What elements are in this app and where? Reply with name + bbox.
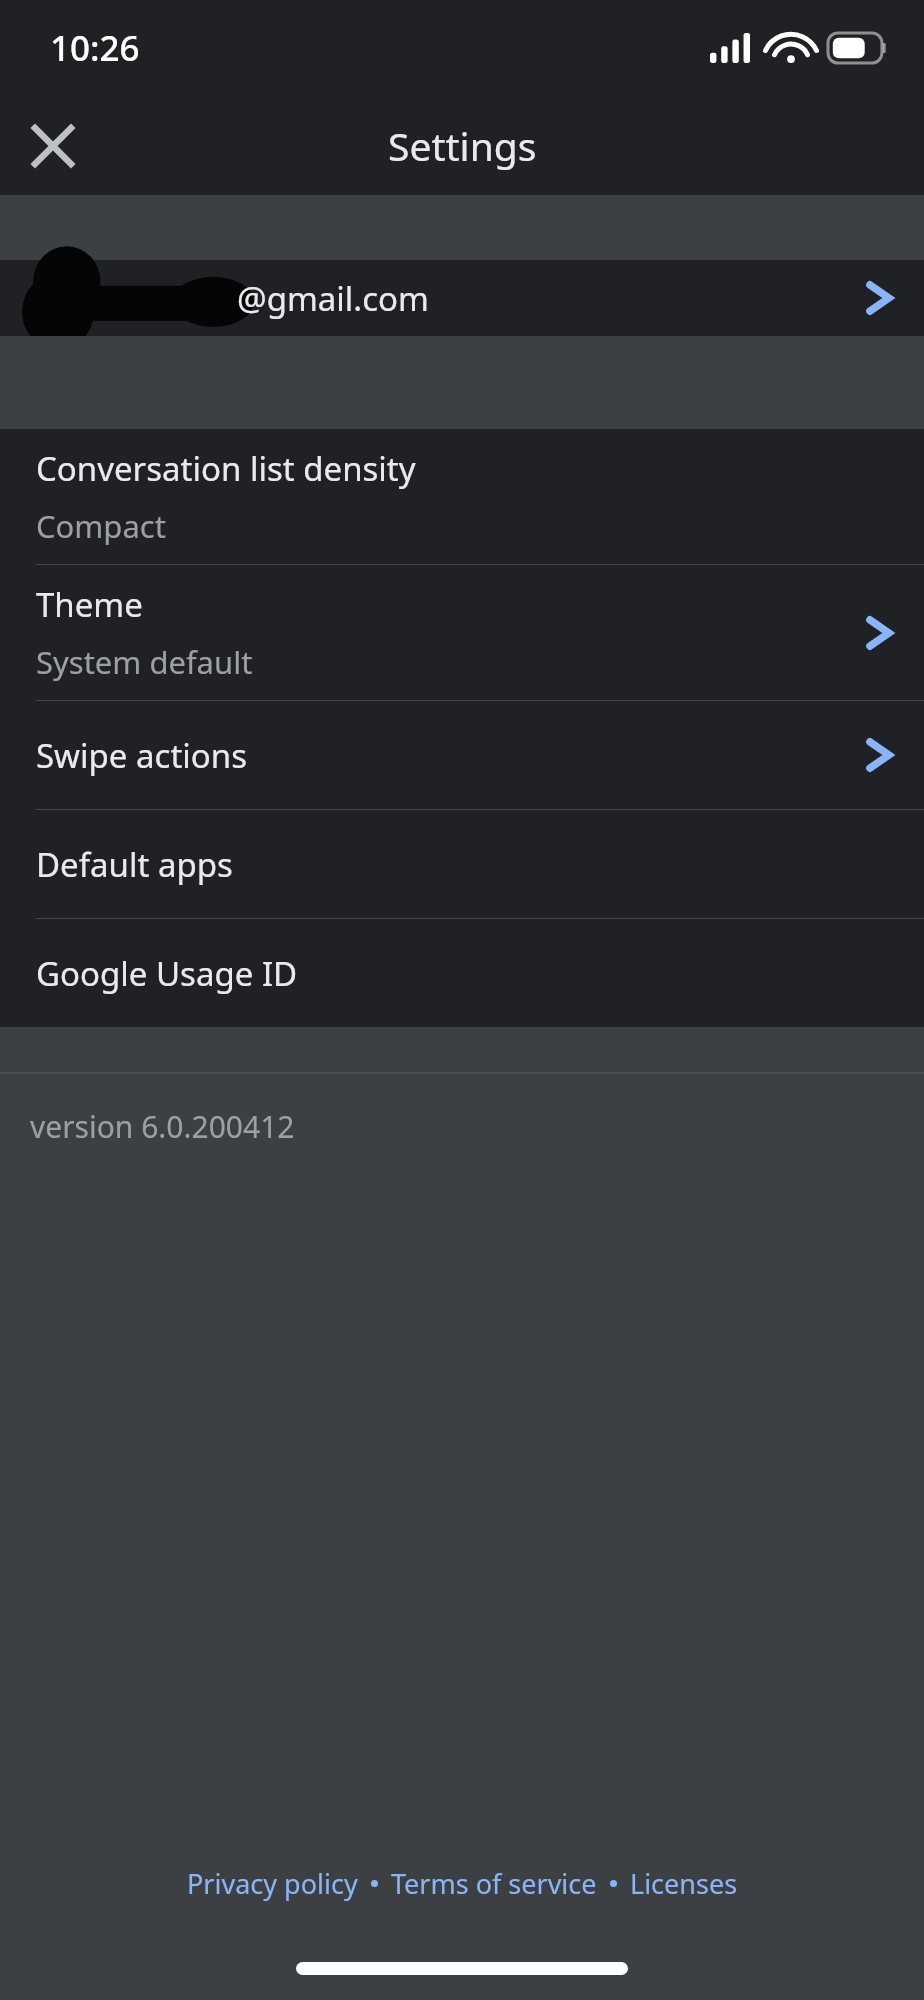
staticText: Settings: [388, 119, 537, 172]
staticText: Default apps: [36, 842, 233, 887]
button[interactable]: Conversation list density: [0, 429, 924, 564]
staticText: Privacy policy: [187, 1865, 358, 1902]
button[interactable]: Google Usage ID: [0, 919, 924, 1027]
staticText: Swipe actions: [36, 733, 248, 778]
staticText: Theme: [36, 582, 143, 627]
staticText: Compact: [36, 505, 166, 547]
button[interactable]: Privacy policy: [183, 1859, 362, 1908]
staticText: Conversation list density: [36, 446, 416, 491]
staticText: Google Usage ID: [36, 951, 298, 996]
button[interactable]: Terms of service: [387, 1859, 601, 1908]
button[interactable]: @gmail.com: [0, 260, 924, 336]
staticText: System default: [36, 641, 253, 683]
staticText: Licenses: [630, 1865, 738, 1902]
button[interactable]: Swipe actions: [0, 701, 924, 809]
button[interactable]: Theme: [0, 565, 924, 700]
button[interactable]: Licenses: [626, 1859, 742, 1908]
button[interactable]: Default apps: [0, 810, 924, 918]
staticText: 10:26: [50, 24, 140, 72]
staticText: @gmail.com: [237, 276, 429, 321]
staticText: version 6.0.200412: [30, 1106, 295, 1147]
staticText: Terms of service: [391, 1865, 597, 1902]
button[interactable]: Close: [16, 109, 90, 183]
